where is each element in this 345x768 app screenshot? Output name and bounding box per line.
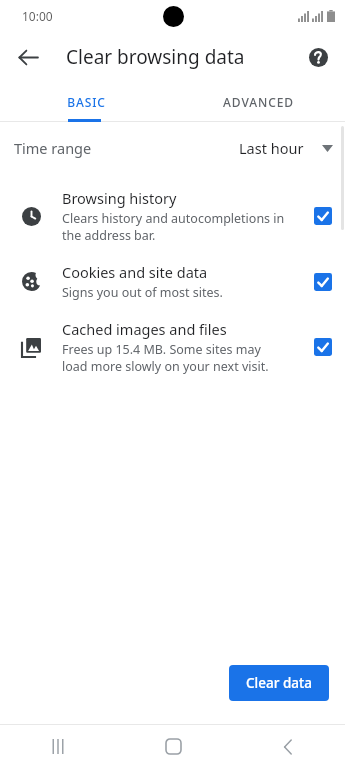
staticText: Frees up 15.4 MB. Some sites may load mo… [62, 341, 288, 375]
button[interactable]: ADVANCED [172, 82, 345, 122]
button[interactable]: Browsing history checkbox [300, 207, 345, 225]
button[interactable]: Navigate up [6, 35, 50, 79]
staticText: Time range [14, 138, 92, 158]
staticText: Clear data [246, 674, 312, 692]
button[interactable]: Cookies and site data checkbox [300, 273, 345, 291]
button[interactable]: Clear data [229, 665, 329, 701]
staticText: Clear browsing data [66, 44, 245, 70]
button[interactable]: Cached images and files [0, 303, 345, 377]
staticText: Cached images and files [62, 319, 227, 339]
button[interactable]: Time range [0, 122, 345, 174]
button[interactable]: BASIC [0, 82, 172, 122]
button[interactable]: Cookies and site data [0, 246, 345, 303]
staticText: Browsing history [62, 188, 177, 208]
staticText: BASIC [67, 94, 106, 110]
staticText: Signs you out of most sites. [62, 284, 223, 301]
staticText: Last hour [239, 138, 304, 158]
button[interactable]: Back [264, 725, 312, 768]
button[interactable]: Cached images and files checkbox [300, 338, 345, 356]
button[interactable]: Help [297, 36, 339, 78]
button[interactable]: Home [149, 725, 197, 768]
staticText: ADVANCED [223, 94, 294, 110]
button[interactable]: Browsing history [0, 174, 345, 246]
staticText: 10:00 [22, 8, 53, 24]
staticText: Cookies and site data [62, 262, 208, 282]
button[interactable]: Recent apps [34, 725, 82, 768]
staticText: Clears history and autocompletions in th… [62, 210, 288, 244]
